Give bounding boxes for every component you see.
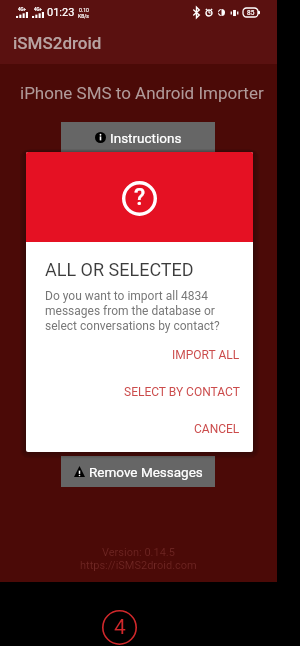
staticText: CANCEL	[194, 422, 240, 436]
staticText: https://iSMS2droid.com	[80, 559, 197, 572]
staticText: IMPORT ALL	[172, 348, 240, 362]
button[interactable]: CANCEL	[26, 410, 253, 447]
staticText: Remove Messages	[89, 464, 203, 480]
button[interactable]: Instructions	[61, 122, 215, 153]
button[interactable]: IMPORT ALL	[26, 336, 253, 373]
staticText: Version: 0.14.5	[102, 546, 175, 559]
staticText: Instructions	[110, 130, 182, 146]
staticText: 01:23	[47, 6, 75, 19]
staticText: iSMS2droid	[13, 33, 102, 53]
staticText: 4	[114, 615, 126, 640]
staticText: Do you want to import all 4834 messages …	[45, 289, 239, 333]
staticText: 0.10	[79, 7, 89, 13]
staticText: iPhone SMS to Android Importer	[20, 83, 264, 103]
staticText: ALL OR SELECTED	[45, 259, 194, 280]
staticText: KB/s	[78, 13, 89, 19]
staticText: 85	[247, 9, 255, 17]
staticText: 4G+	[18, 7, 27, 12]
button[interactable]: SELECT BY CONTACT	[26, 373, 253, 410]
staticText: SELECT BY CONTACT	[124, 385, 240, 399]
button[interactable]: Remove Messages	[61, 456, 215, 487]
staticText: 4G+	[34, 7, 43, 12]
staticText: ?	[134, 184, 146, 211]
button[interactable]: iSMS2droid	[0, 25, 277, 64]
